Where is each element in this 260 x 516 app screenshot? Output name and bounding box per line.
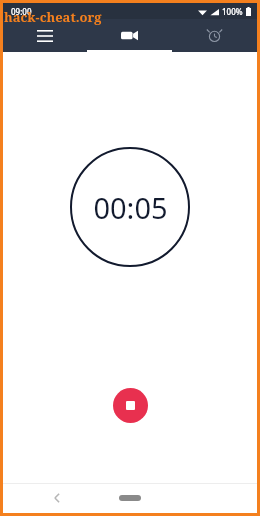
button[interactable]: Stop recording — [113, 388, 148, 423]
button[interactable]: Timer 00:05 — [70, 147, 190, 267]
button[interactable]: Back — [47, 488, 67, 508]
staticText: 00:05 — [93, 188, 168, 227]
button[interactable]: Alarm — [172, 19, 257, 52]
button[interactable]: Menu — [3, 19, 87, 52]
button[interactable]: Video recorder — [87, 19, 172, 52]
button[interactable]: Home — [119, 495, 141, 501]
staticText: 09:00 — [11, 6, 32, 17]
staticText: 100% — [222, 6, 243, 17]
staticText: hack-cheat.org — [4, 8, 102, 26]
